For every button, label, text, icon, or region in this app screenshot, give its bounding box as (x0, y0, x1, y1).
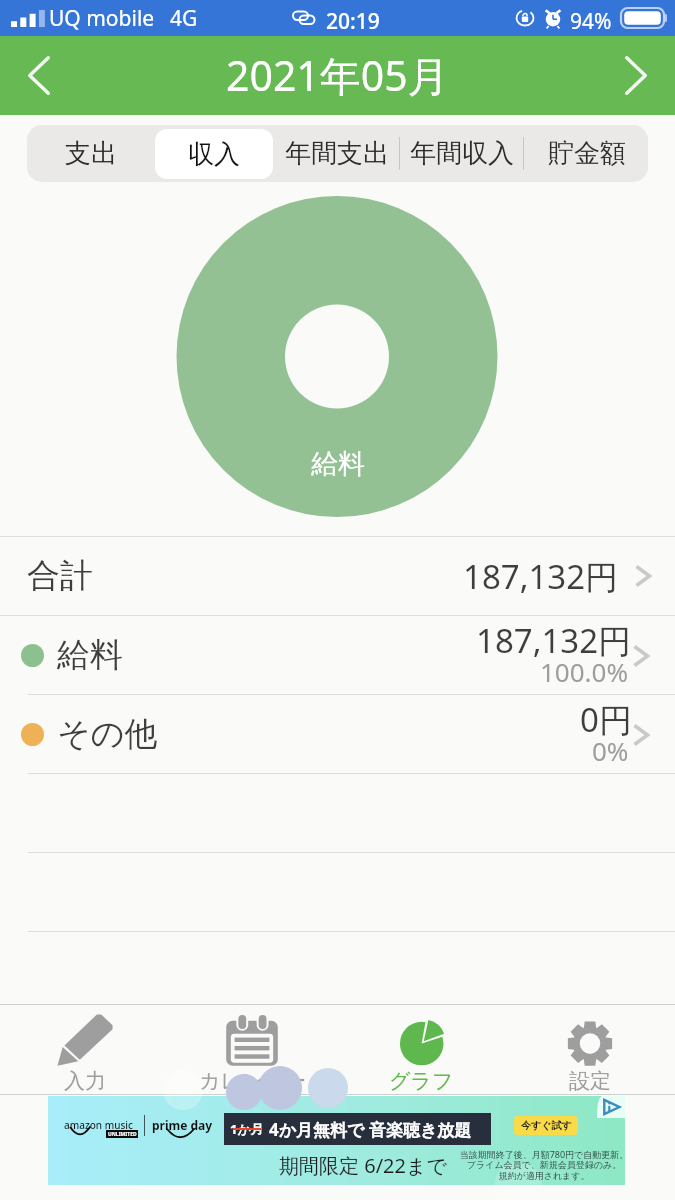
button[interactable]: 収入 (155, 129, 273, 179)
staticText: 収入 (188, 138, 240, 171)
staticText: UQ mobile (49, 4, 155, 33)
staticText: 4か月無料で 音楽聴き放題 (269, 1118, 472, 1141)
button[interactable]: 年間支出 (275, 125, 399, 182)
staticText: 0円 (580, 697, 632, 742)
staticText: 187,132円 (476, 618, 632, 663)
staticText: 0% (592, 733, 629, 768)
staticText: 貯金額 (548, 137, 626, 170)
staticText: 入力 (64, 1068, 106, 1094)
button[interactable]: Input (1, 1005, 169, 1094)
button[interactable]: Calendar (168, 1005, 336, 1094)
button[interactable]: Previous month (7, 56, 65, 114)
button[interactable]: その他 (0, 695, 675, 773)
staticText: 給料 (311, 447, 365, 481)
staticText: 当該期間終了後、月額780円で自動更新。 プライム会員で、新規会員登録のみ。 規… (458, 1148, 630, 1182)
button[interactable]: Settings (506, 1005, 674, 1094)
staticText: 100.0% (540, 654, 629, 689)
button[interactable]: 支出 (27, 125, 155, 182)
staticText: prime day (152, 1117, 213, 1133)
staticText: UNLIMITED (108, 1131, 137, 1138)
button[interactable]: 年間収入 (400, 125, 524, 182)
staticText: その他 (57, 713, 158, 755)
staticText: 187,132円 (463, 554, 619, 599)
button[interactable]: Next month (610, 56, 668, 114)
button[interactable]: Advertisement (48, 1096, 625, 1185)
button[interactable]: 給料 (0, 616, 675, 694)
staticText: 4G (170, 4, 198, 33)
staticText: 2021年05月 (226, 47, 449, 103)
button[interactable]: 貯金額 (525, 125, 648, 182)
button[interactable]: 合計 (0, 537, 675, 615)
staticText: 年間支出 (285, 137, 389, 170)
staticText: 期間限定 6/22まで (279, 1152, 447, 1179)
staticText: 合計 (27, 555, 93, 597)
staticText: カレンダー (199, 1068, 306, 1094)
button[interactable]: Graph (337, 1005, 505, 1094)
staticText: 94% (570, 7, 612, 36)
staticText: 給料 (57, 634, 123, 676)
staticText: 20:19 (326, 7, 380, 36)
staticText: 1か月 (230, 1120, 264, 1138)
staticText: amazon music (64, 1118, 133, 1132)
staticText: 設定 (569, 1068, 611, 1094)
staticText: 年間収入 (410, 137, 514, 170)
staticText: グラフ (389, 1068, 454, 1094)
staticText: 支出 (65, 137, 117, 170)
staticText: 今すぐ試す (521, 1119, 572, 1132)
